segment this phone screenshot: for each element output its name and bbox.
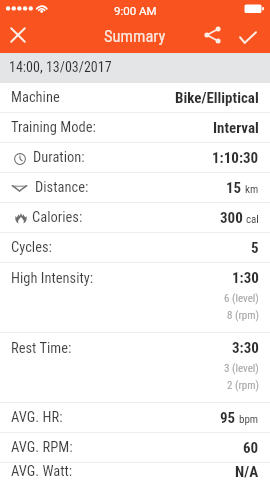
button[interactable]: Close [3,20,32,50]
staticText: AVG. Watt: [11,463,73,480]
staticText: Duration: [33,149,85,166]
staticText: High Intensity: [11,270,94,287]
button[interactable]: Cycles: [0,233,270,262]
staticText: 95 [220,409,236,427]
button[interactable]: AVG. RPM: [0,433,270,462]
staticText: Rest Time: [11,340,72,357]
staticText: Summary [104,27,166,46]
staticText: AVG. RPM: [11,439,73,456]
button[interactable]: Duration: [0,143,270,172]
button[interactable]: High Intensity: [0,263,270,332]
staticText: 3 (level) [224,362,259,375]
button[interactable]: Distance: [0,173,270,202]
staticText: 8 (rpm) [227,309,259,322]
button[interactable]: AVG. Watt: [0,463,270,480]
staticText: km [245,183,259,196]
staticText: 3:30 [232,339,259,357]
staticText: 300 [220,209,243,227]
button[interactable]: Calories: [0,203,270,232]
staticText: AVG. HR: [11,409,63,426]
staticText: 15 [226,179,242,197]
button[interactable]: AVG. HR: [0,403,270,432]
staticText: Training Mode: [11,119,96,136]
staticText: 9:00 AM [114,4,157,17]
staticText: N/A [235,463,259,480]
button[interactable]: Training Mode: [0,113,270,142]
staticText: 5 [251,239,259,257]
staticText: cal [246,213,259,226]
staticText: Distance: [35,179,89,196]
staticText: Calories: [32,209,83,226]
button[interactable]: Machine [0,83,270,112]
staticText: Interval [213,119,259,137]
button[interactable]: Share [198,20,226,50]
staticText: Bike/Elliptical [175,89,259,107]
staticText: 2 (rpm) [227,379,259,392]
staticText: 1:10:30 [212,149,259,167]
staticText: 60 [243,439,259,457]
button[interactable]: Rest Time: [0,333,270,402]
button[interactable]: Done [234,22,262,52]
staticText: 6 (level) [224,292,259,305]
staticText: bpm [239,413,259,426]
staticText: Machine [11,89,60,106]
staticText: Cycles: [11,239,52,256]
staticText: 14:00, 13/03/2017 [9,59,112,75]
staticText: 1:30 [232,269,259,287]
